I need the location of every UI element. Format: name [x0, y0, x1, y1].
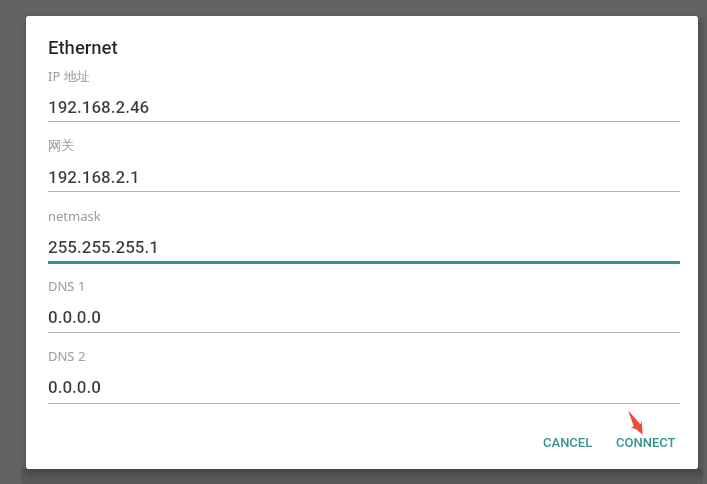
staticText: Ethernet: [48, 37, 118, 59]
staticText: DNS 1: [48, 277, 86, 295]
button[interactable]: [48, 201, 680, 264]
button[interactable]: [48, 271, 680, 334]
staticText: netmask: [48, 207, 101, 225]
staticText: 0.0.0.0: [48, 377, 101, 397]
staticText: 网关: [48, 137, 74, 153]
button[interactable]: [48, 61, 680, 123]
staticText: 192.168.2.1: [48, 167, 140, 187]
button[interactable]: [48, 341, 680, 405]
staticText: CANCEL: [543, 435, 593, 450]
staticText: 255.255.255.1: [48, 237, 159, 257]
staticText: 0.0.0.0: [48, 307, 101, 327]
staticText: IP 地址: [48, 67, 90, 85]
button[interactable]: CANCEL: [531, 425, 605, 460]
button[interactable]: CONNECT: [604, 425, 688, 460]
staticText: CONNECT: [616, 435, 676, 450]
button[interactable]: [48, 131, 680, 193]
staticText: DNS 2: [48, 347, 86, 365]
staticText: 192.168.2.46: [48, 97, 150, 117]
